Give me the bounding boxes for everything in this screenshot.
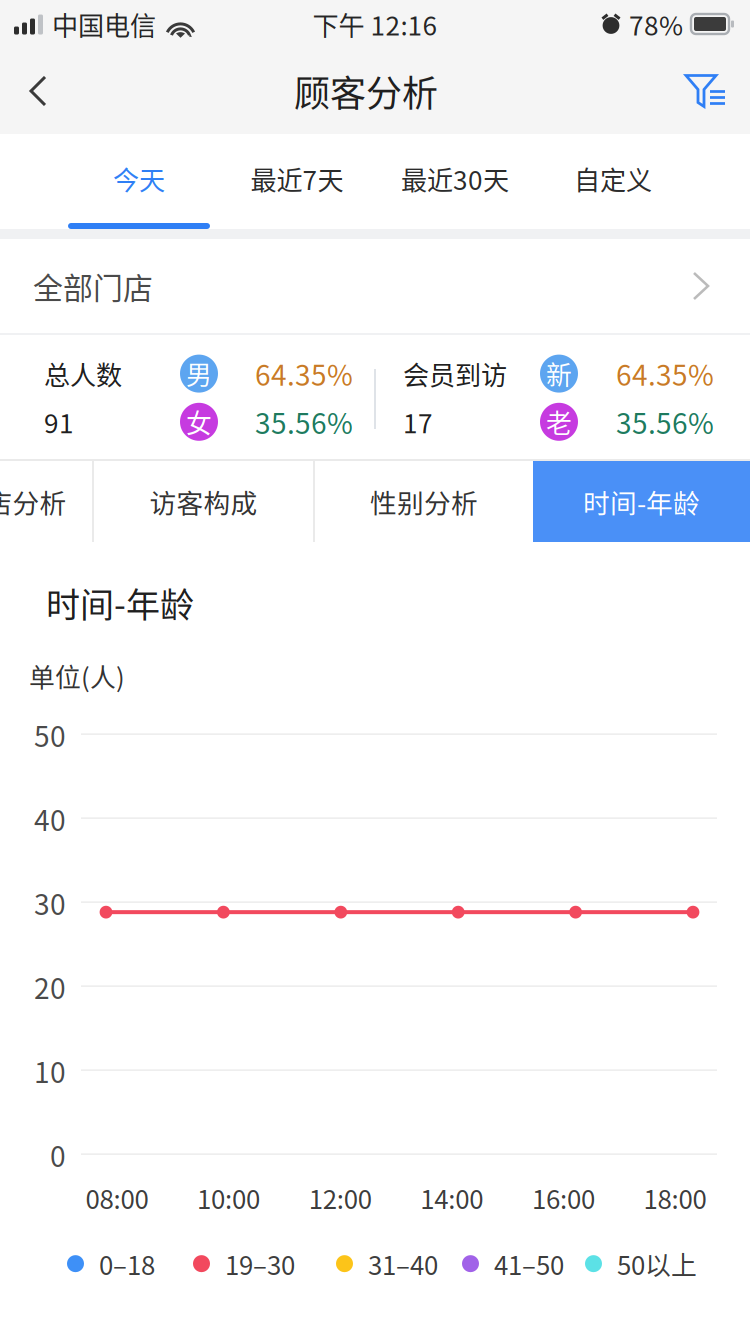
staticText: 全部门店 xyxy=(33,264,153,308)
staticText: 30 xyxy=(34,882,66,923)
staticText: 店分析 xyxy=(0,482,66,521)
staticText: 性别分析 xyxy=(370,482,478,521)
staticText: 顾客分析 xyxy=(294,65,438,117)
staticText: 今天 xyxy=(113,160,165,197)
button[interactable]: 今天 xyxy=(60,134,218,229)
staticText: 最近7天 xyxy=(250,160,343,197)
staticText: 10:00 xyxy=(197,1179,260,1216)
staticText: 新 xyxy=(546,355,572,392)
staticText: 0 xyxy=(50,1134,66,1175)
staticText: 64.35% xyxy=(255,353,353,394)
staticText: 64.35% xyxy=(616,353,714,394)
staticText: 时间-年龄 xyxy=(583,482,700,521)
staticText: 18:00 xyxy=(643,1179,706,1216)
button[interactable]: 店分析 xyxy=(0,461,92,542)
staticText: 总人数 xyxy=(44,355,122,392)
staticText: 91 xyxy=(44,403,74,441)
staticText: 单位(人) xyxy=(29,657,125,695)
staticText: 50 xyxy=(34,714,66,755)
staticText: 时间-年龄 xyxy=(46,578,194,627)
staticText: 31–40 xyxy=(368,1245,438,1282)
staticText: 自定义 xyxy=(574,160,652,197)
staticText: 下午 12:16 xyxy=(312,5,437,43)
staticText: 10 xyxy=(34,1050,66,1091)
button[interactable]: 最近30天 xyxy=(376,134,534,229)
staticText: 中国电信 xyxy=(52,5,156,43)
staticText: 访客构成 xyxy=(149,482,257,521)
staticText: 16:00 xyxy=(532,1179,595,1216)
button[interactable]: 最近7天 xyxy=(218,134,376,229)
staticText: 78% xyxy=(629,5,683,43)
button[interactable]: Filter xyxy=(660,50,750,131)
staticText: 14:00 xyxy=(420,1179,483,1216)
button[interactable]: 性别分析 xyxy=(315,461,533,542)
staticText: 35.56% xyxy=(616,401,714,442)
staticText: 20 xyxy=(34,966,66,1007)
staticText: 老 xyxy=(546,403,572,440)
staticText: 41–50 xyxy=(494,1245,564,1282)
staticText: 40 xyxy=(34,798,66,839)
button[interactable]: 自定义 xyxy=(534,134,692,229)
staticText: 女 xyxy=(186,403,212,440)
staticText: 0–18 xyxy=(99,1245,155,1282)
staticText: 12:00 xyxy=(309,1179,372,1216)
staticText: 08:00 xyxy=(85,1179,148,1216)
staticText: 35.56% xyxy=(255,401,353,442)
staticText: 50以上 xyxy=(617,1245,697,1282)
staticText: 17 xyxy=(403,403,433,441)
button[interactable]: 时间-年龄 xyxy=(533,461,750,542)
button[interactable]: Back xyxy=(0,51,72,131)
staticText: 最近30天 xyxy=(401,160,509,197)
staticText: 会员到访 xyxy=(403,355,507,392)
staticText: 19–30 xyxy=(225,1245,295,1282)
staticText: 男 xyxy=(186,355,212,392)
button[interactable]: 全部门店 xyxy=(0,239,750,333)
button[interactable]: 访客构成 xyxy=(94,461,313,542)
